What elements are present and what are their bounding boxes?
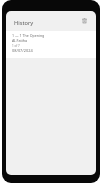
button[interactable]: 1 — 1 The Opening — [6, 31, 96, 58]
staticText: History — [14, 19, 34, 27]
staticText: Al-Fatiha — [12, 38, 28, 43]
staticText: 1 — 1 The Opening — [12, 33, 45, 38]
button[interactable]: History — [14, 19, 34, 27]
staticText: 1 of 7 — [12, 44, 20, 48]
staticText: 08/07/2024 — [12, 48, 33, 53]
button[interactable]: Delete history — [79, 15, 89, 25]
